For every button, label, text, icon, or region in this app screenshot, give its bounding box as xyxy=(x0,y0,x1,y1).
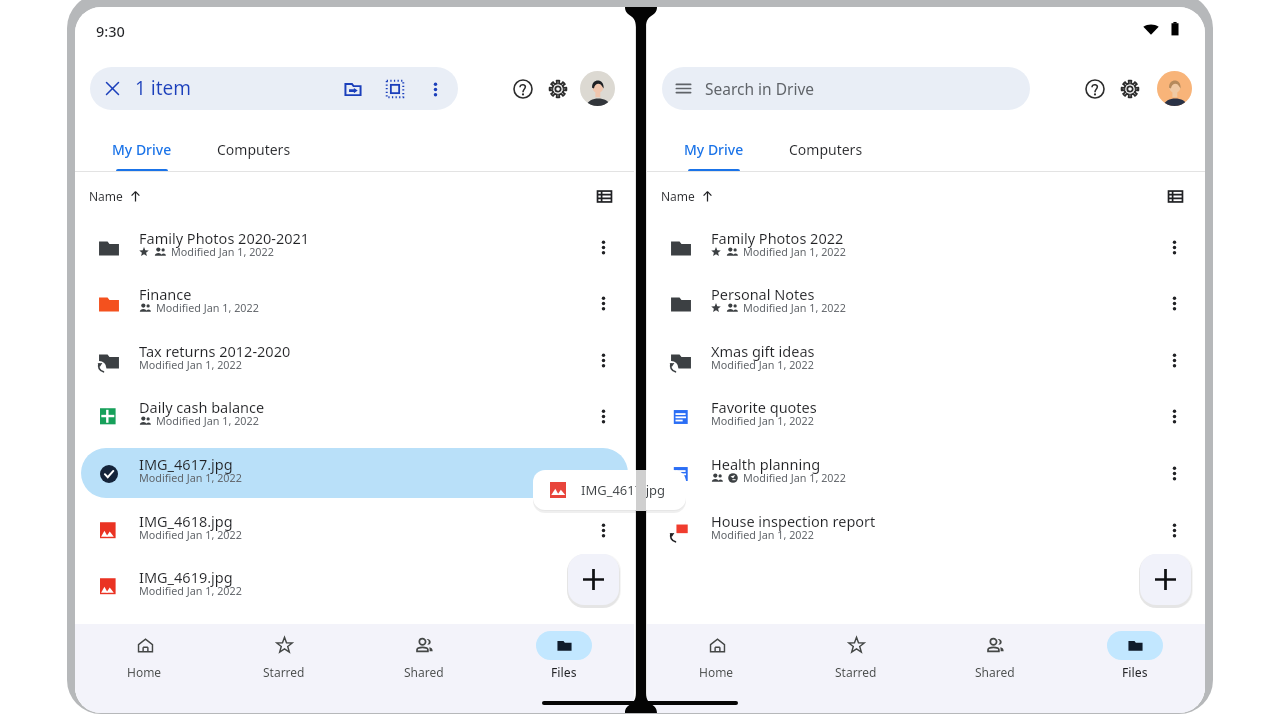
button[interactable]: IMG_4619.jpg xyxy=(81,561,628,611)
staticText: Files xyxy=(1122,664,1148,680)
button[interactable]: Move xyxy=(334,70,372,108)
button[interactable]: More options for IMG_4619.jpg xyxy=(586,569,620,603)
staticText: Modified Jan 1, 2022 xyxy=(156,413,259,428)
button[interactable]: IMG_4617.jpg xyxy=(81,448,628,498)
button[interactable]: New xyxy=(1140,554,1191,605)
button[interactable]: Starred xyxy=(786,624,925,713)
staticText: Modified Jan 1, 2022 xyxy=(743,470,846,485)
staticText: Shared xyxy=(975,664,1015,680)
button[interactable]: Xmas gift ideas xyxy=(653,335,1199,385)
staticText: IMG_4617.jpg xyxy=(581,481,666,499)
button[interactable]: Finance xyxy=(81,278,628,328)
button[interactable]: More options for House inspection report xyxy=(1157,513,1191,547)
button[interactable]: Account xyxy=(1157,71,1192,106)
button[interactable]: More options for Tax returns 2012-2020 xyxy=(586,343,620,377)
staticText: Home xyxy=(699,664,734,680)
staticText: Starred xyxy=(263,664,305,680)
staticText: Modified Jan 1, 2022 xyxy=(139,357,242,372)
button[interactable]: Files xyxy=(1065,624,1205,713)
staticText: Starred xyxy=(835,664,877,680)
staticText: Xmas gift ideas xyxy=(711,341,815,361)
button[interactable]: Search in Drive xyxy=(662,67,1030,110)
staticText: Computers xyxy=(217,140,291,159)
staticText: 9:30 xyxy=(96,21,125,41)
button[interactable]: Files xyxy=(494,624,634,713)
staticText: Finance xyxy=(139,284,192,304)
button[interactable]: Home xyxy=(75,624,214,713)
staticText: Modified Jan 1, 2022 xyxy=(156,300,259,315)
button[interactable]: Family Photos 2022 xyxy=(653,222,1199,272)
button[interactable]: Select all xyxy=(376,70,414,108)
staticText: Name xyxy=(89,188,123,204)
button[interactable]: More options xyxy=(416,70,454,108)
staticText: My Drive xyxy=(684,140,744,159)
staticText: Modified Jan 1, 2022 xyxy=(711,527,814,542)
staticText: Search in Drive xyxy=(705,78,815,99)
staticText: Tax returns 2012-2020 xyxy=(139,341,291,361)
button[interactable]: IMG_4617.jpg xyxy=(533,470,686,510)
button[interactable]: Help xyxy=(1076,70,1114,108)
staticText: Files xyxy=(551,664,577,680)
button[interactable]: New xyxy=(568,554,619,605)
button[interactable]: Account xyxy=(580,71,615,106)
button[interactable]: Name xyxy=(89,174,142,218)
button[interactable]: Name xyxy=(661,174,714,218)
staticText: Modified Jan 1, 2022 xyxy=(743,300,846,315)
button[interactable]: House inspection report xyxy=(653,505,1199,555)
button[interactable]: Shared xyxy=(925,624,1065,713)
staticText: Modified Jan 1, 2022 xyxy=(139,583,242,598)
button[interactable]: More options for Personal Notes xyxy=(1157,286,1191,320)
button[interactable]: Daily cash balance xyxy=(81,391,628,441)
button[interactable]: More options for Xmas gift ideas xyxy=(1157,343,1191,377)
button[interactable]: Tax returns 2012-2020 xyxy=(81,335,628,385)
staticText: Modified Jan 1, 2022 xyxy=(139,527,242,542)
button[interactable]: More options for Health planning xyxy=(1157,456,1191,490)
button[interactable]: Close selection xyxy=(90,67,135,110)
button[interactable]: Starred xyxy=(214,624,354,713)
staticText: IMG_4619.jpg xyxy=(139,567,233,587)
staticText: Personal Notes xyxy=(711,284,815,304)
button[interactable]: More options for Daily cash balance xyxy=(586,399,620,433)
button[interactable]: More options for Finance xyxy=(586,286,620,320)
staticText: Modified Jan 1, 2022 xyxy=(711,413,814,428)
button[interactable]: Favorite quotes xyxy=(653,391,1199,441)
button[interactable]: More options for Favorite quotes xyxy=(1157,399,1191,433)
staticText: Home xyxy=(127,664,162,680)
button[interactable]: Health planning xyxy=(653,448,1199,498)
button[interactable]: Home xyxy=(647,624,786,713)
staticText: My Drive xyxy=(112,140,172,159)
button[interactable]: Computers xyxy=(767,128,885,172)
button[interactable]: My Drive xyxy=(661,128,767,172)
button[interactable]: Settings xyxy=(539,70,577,108)
staticText: Family Photos 2022 xyxy=(711,228,844,248)
button[interactable]: Settings xyxy=(1111,70,1149,108)
staticText: Family Photos 2020-2021 xyxy=(139,228,310,248)
staticText: Name xyxy=(661,188,695,204)
button[interactable]: Personal Notes xyxy=(653,278,1199,328)
staticText: Favorite quotes xyxy=(711,397,817,417)
staticText: Modified Jan 1, 2022 xyxy=(139,470,242,485)
staticText: 1 item xyxy=(135,75,192,101)
button[interactable]: IMG_4618.jpg xyxy=(81,505,628,555)
button[interactable]: My Drive xyxy=(89,128,195,172)
staticText: House inspection report xyxy=(711,511,876,531)
button[interactable]: Switch to grid view xyxy=(590,182,618,210)
staticText: Daily cash balance xyxy=(139,397,265,417)
button[interactable]: Switch to grid view xyxy=(1161,182,1189,210)
staticText: Modified Jan 1, 2022 xyxy=(171,244,274,259)
button[interactable]: More options for IMG_4618.jpg xyxy=(586,513,620,547)
staticText: Shared xyxy=(404,664,444,680)
button[interactable]: Shared xyxy=(354,624,494,713)
staticText: IMG_4617.jpg xyxy=(139,454,233,474)
staticText: Modified Jan 1, 2022 xyxy=(711,357,814,372)
button[interactable]: Help xyxy=(504,70,542,108)
button[interactable]: More options for Family Photos 2020-2021 xyxy=(586,230,620,264)
staticText: IMG_4618.jpg xyxy=(139,511,233,531)
button[interactable]: Close selection xyxy=(90,67,458,110)
staticText: Computers xyxy=(789,140,863,159)
button[interactable]: Computers xyxy=(195,128,313,172)
button[interactable]: More options for Family Photos 2022 xyxy=(1157,230,1191,264)
button[interactable]: Family Photos 2020-2021 xyxy=(81,222,628,272)
staticText: Modified Jan 1, 2022 xyxy=(743,244,846,259)
staticText: Health planning xyxy=(711,454,821,474)
